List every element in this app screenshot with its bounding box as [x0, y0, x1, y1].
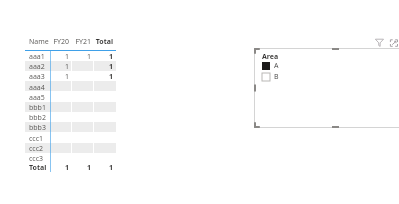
staticText: Area: [262, 52, 279, 62]
staticText: 1: [73, 163, 113, 173]
staticText: aaa4: [29, 83, 69, 93]
staticText: aaa2: [29, 62, 69, 72]
staticText: aaa1: [29, 52, 69, 62]
button[interactable]: Name: [0, 0, 399, 204]
staticText: 1: [51, 163, 91, 173]
staticText: 1: [29, 72, 69, 82]
button[interactable]: Area: [254, 48, 399, 128]
staticText: B: [274, 72, 279, 80]
staticText: bbb3: [29, 123, 69, 133]
button[interactable]: Filters: [374, 37, 385, 48]
staticText: bbb1: [29, 103, 69, 113]
staticText: Total: [29, 163, 69, 173]
button[interactable]: Focus mode: [389, 37, 399, 48]
staticText: 1: [29, 62, 69, 72]
staticText: FY21: [51, 37, 91, 47]
staticText: bbb2: [29, 113, 69, 123]
staticText: 1: [51, 52, 91, 62]
staticText: aaa3: [29, 72, 69, 82]
staticText: 1: [73, 52, 113, 62]
staticText: 1: [73, 62, 113, 72]
staticText: ccc3: [29, 154, 69, 164]
staticText: ccc1: [29, 134, 69, 144]
staticText: 1: [29, 163, 69, 173]
staticText: A: [274, 61, 279, 69]
staticText: 1: [73, 72, 113, 82]
staticText: aaa5: [29, 93, 69, 103]
button[interactable]: B: [262, 73, 284, 81]
button[interactable]: A: [262, 62, 284, 70]
staticText: ccc2: [29, 144, 69, 154]
staticText: Name: [29, 37, 69, 47]
staticText: 1: [29, 52, 69, 62]
staticText: Total: [73, 37, 113, 47]
staticText: FY20: [29, 37, 69, 47]
